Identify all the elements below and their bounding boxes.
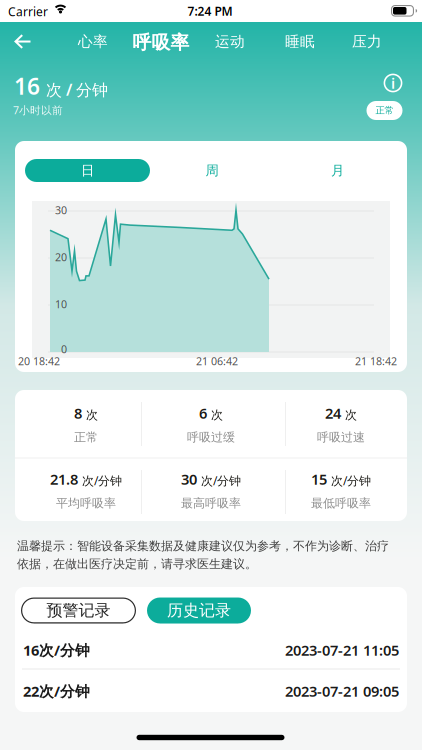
staticText: 最低呼吸率 xyxy=(311,496,371,511)
staticText: 周 xyxy=(205,162,218,179)
staticText: 20 xyxy=(55,250,67,264)
button[interactable]: 16次/分钟 xyxy=(23,632,399,668)
staticText: 16次/分钟 xyxy=(23,640,90,660)
button[interactable]: 呼吸率 xyxy=(132,31,189,54)
button[interactable]: 22次/分钟 xyxy=(23,673,399,709)
staticText: 2023-07-21 11:05 xyxy=(285,640,399,660)
staticText: 21.8 次/分钟 xyxy=(50,469,122,489)
staticText: 24 次 xyxy=(325,403,357,423)
staticText: 呼吸过速 xyxy=(317,430,365,445)
staticText: 温馨提示：智能设备采集数据及健康建议仅为参考，不作为诊断、治疗 xyxy=(17,539,389,553)
button[interactable]: 睡眠 xyxy=(285,32,315,50)
staticText: 10 xyxy=(55,297,67,311)
button[interactable]: 运动 xyxy=(215,32,245,50)
staticText: 7小时以前 xyxy=(13,103,63,117)
staticText: 预警记录 xyxy=(46,601,110,620)
staticText: 正常 xyxy=(375,105,393,116)
staticText: 15 次/分钟 xyxy=(311,469,371,489)
staticText: 压力 xyxy=(352,32,382,50)
button[interactable]: 历史记录 xyxy=(147,597,251,623)
button[interactable]: 压力 xyxy=(352,32,382,50)
staticText: 呼吸过缓 xyxy=(187,430,235,445)
staticText: 8 次 xyxy=(74,403,98,423)
staticText: i xyxy=(391,73,395,93)
button[interactable]: 日 xyxy=(25,159,150,182)
staticText: 2023-07-21 09:05 xyxy=(285,681,399,701)
button[interactable]: 预警记录 xyxy=(21,597,136,623)
staticText: 21 18:42 xyxy=(355,354,397,368)
staticText: 月 xyxy=(331,162,344,179)
staticText: 平均呼吸率 xyxy=(56,496,116,511)
staticText: 呼吸率 xyxy=(132,31,189,54)
staticText: 日 xyxy=(81,162,94,179)
staticText: 心率 xyxy=(78,32,108,50)
staticText: 20 18:42 xyxy=(18,354,60,368)
staticText: 运动 xyxy=(215,32,245,50)
staticText: 依据，在做出医疗决定前，请寻求医生建议。 xyxy=(17,557,257,571)
staticText: 正常 xyxy=(74,430,98,445)
staticText: 最高呼吸率 xyxy=(181,496,241,511)
staticText: 30 xyxy=(55,203,67,217)
staticText: Carrier xyxy=(8,3,48,19)
staticText: 7:24 PM xyxy=(187,3,232,19)
staticText: 16 次 / 分钟 xyxy=(14,71,108,101)
button[interactable]: 月 xyxy=(275,159,400,182)
button[interactable]: 周 xyxy=(149,159,274,182)
staticText: 30 次/分钟 xyxy=(181,469,241,489)
staticText: 历史记录 xyxy=(167,601,231,620)
staticText: 睡眠 xyxy=(285,32,315,50)
staticText: 0 xyxy=(61,342,67,356)
button[interactable]: Back xyxy=(13,34,32,48)
staticText: 22次/分钟 xyxy=(23,681,90,701)
button[interactable]: Info xyxy=(383,73,402,92)
staticText: 6 次 xyxy=(199,403,223,423)
button[interactable]: 心率 xyxy=(78,32,108,50)
staticText: 21 06:42 xyxy=(196,354,238,368)
